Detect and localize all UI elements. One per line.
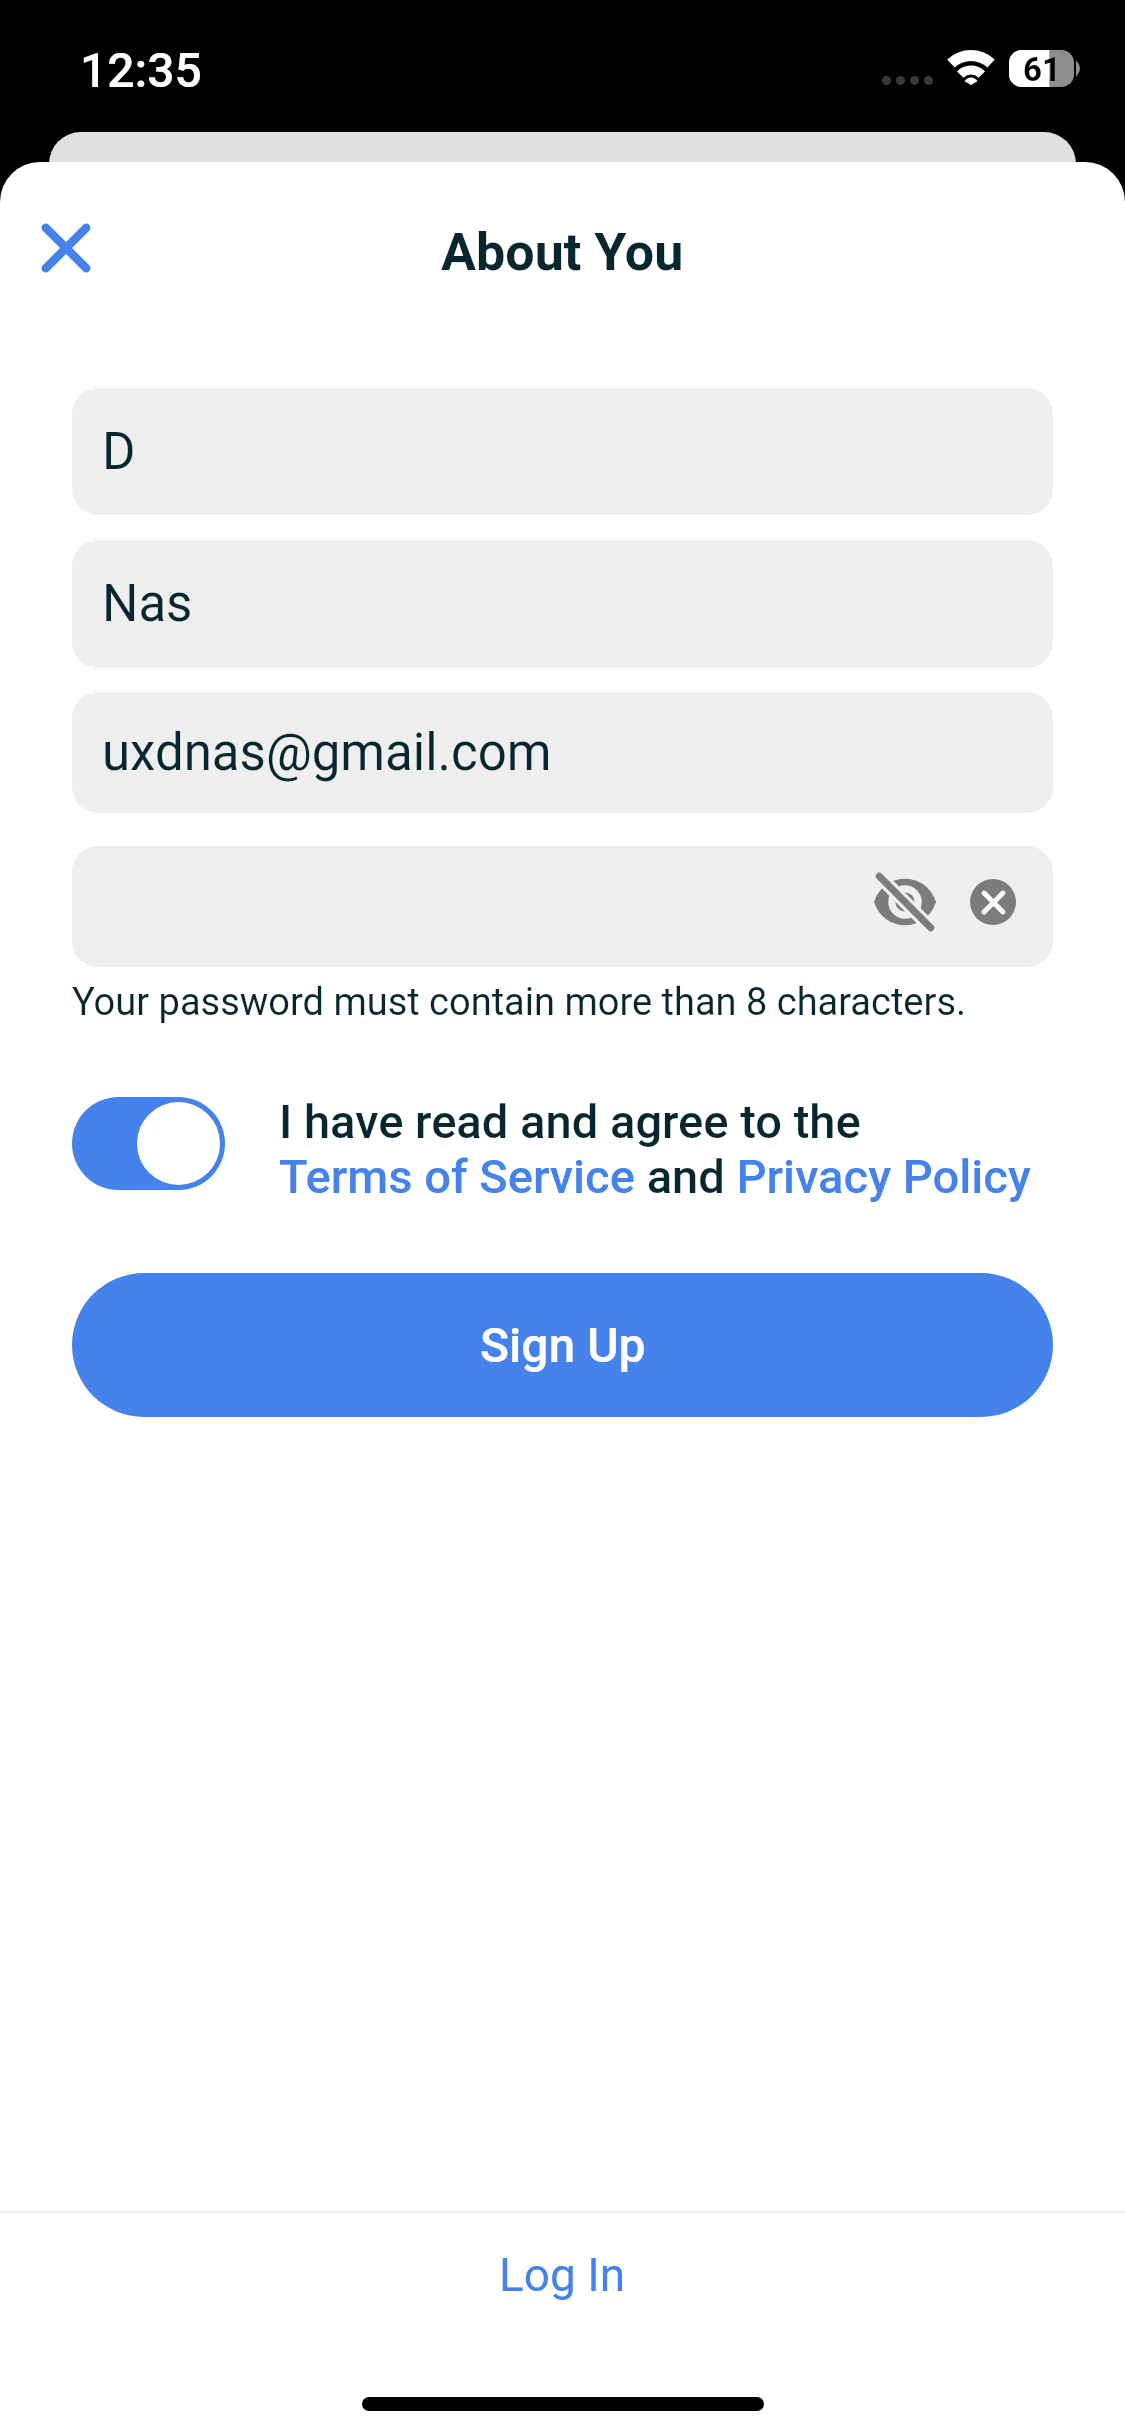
button[interactable]: I have read and agree to the Terms of Se…	[279, 1094, 1031, 1205]
staticText: D	[102, 422, 136, 482]
staticText: 61	[1023, 50, 1061, 87]
button[interactable]: I have read and agree to the terms	[72, 1097, 225, 1190]
staticText: Log In	[499, 2248, 626, 2302]
staticText: uxdnas@gmail.com	[102, 723, 552, 783]
button[interactable]: Close	[24, 206, 108, 290]
staticText: Your password must contain more than 8 c…	[72, 980, 967, 1025]
button[interactable]: Log In	[0, 2210, 1125, 2340]
staticText: Sign Up	[480, 1317, 646, 1373]
staticText: 12:35	[80, 42, 202, 98]
button[interactable]: uxdnas@gmail.com	[72, 692, 1053, 813]
button[interactable]: D	[72, 388, 1053, 515]
staticText: Nas	[102, 574, 193, 634]
button[interactable]: Clear	[970, 879, 1016, 925]
button[interactable]: Show password	[72, 846, 1053, 967]
button[interactable]: Nas	[72, 540, 1053, 668]
button[interactable]: Show password	[861, 858, 949, 946]
staticText: I have read and agree to the Terms of Se…	[279, 1094, 1031, 1205]
button[interactable]: Sign Up	[72, 1273, 1053, 1417]
staticText: About You	[441, 222, 684, 283]
